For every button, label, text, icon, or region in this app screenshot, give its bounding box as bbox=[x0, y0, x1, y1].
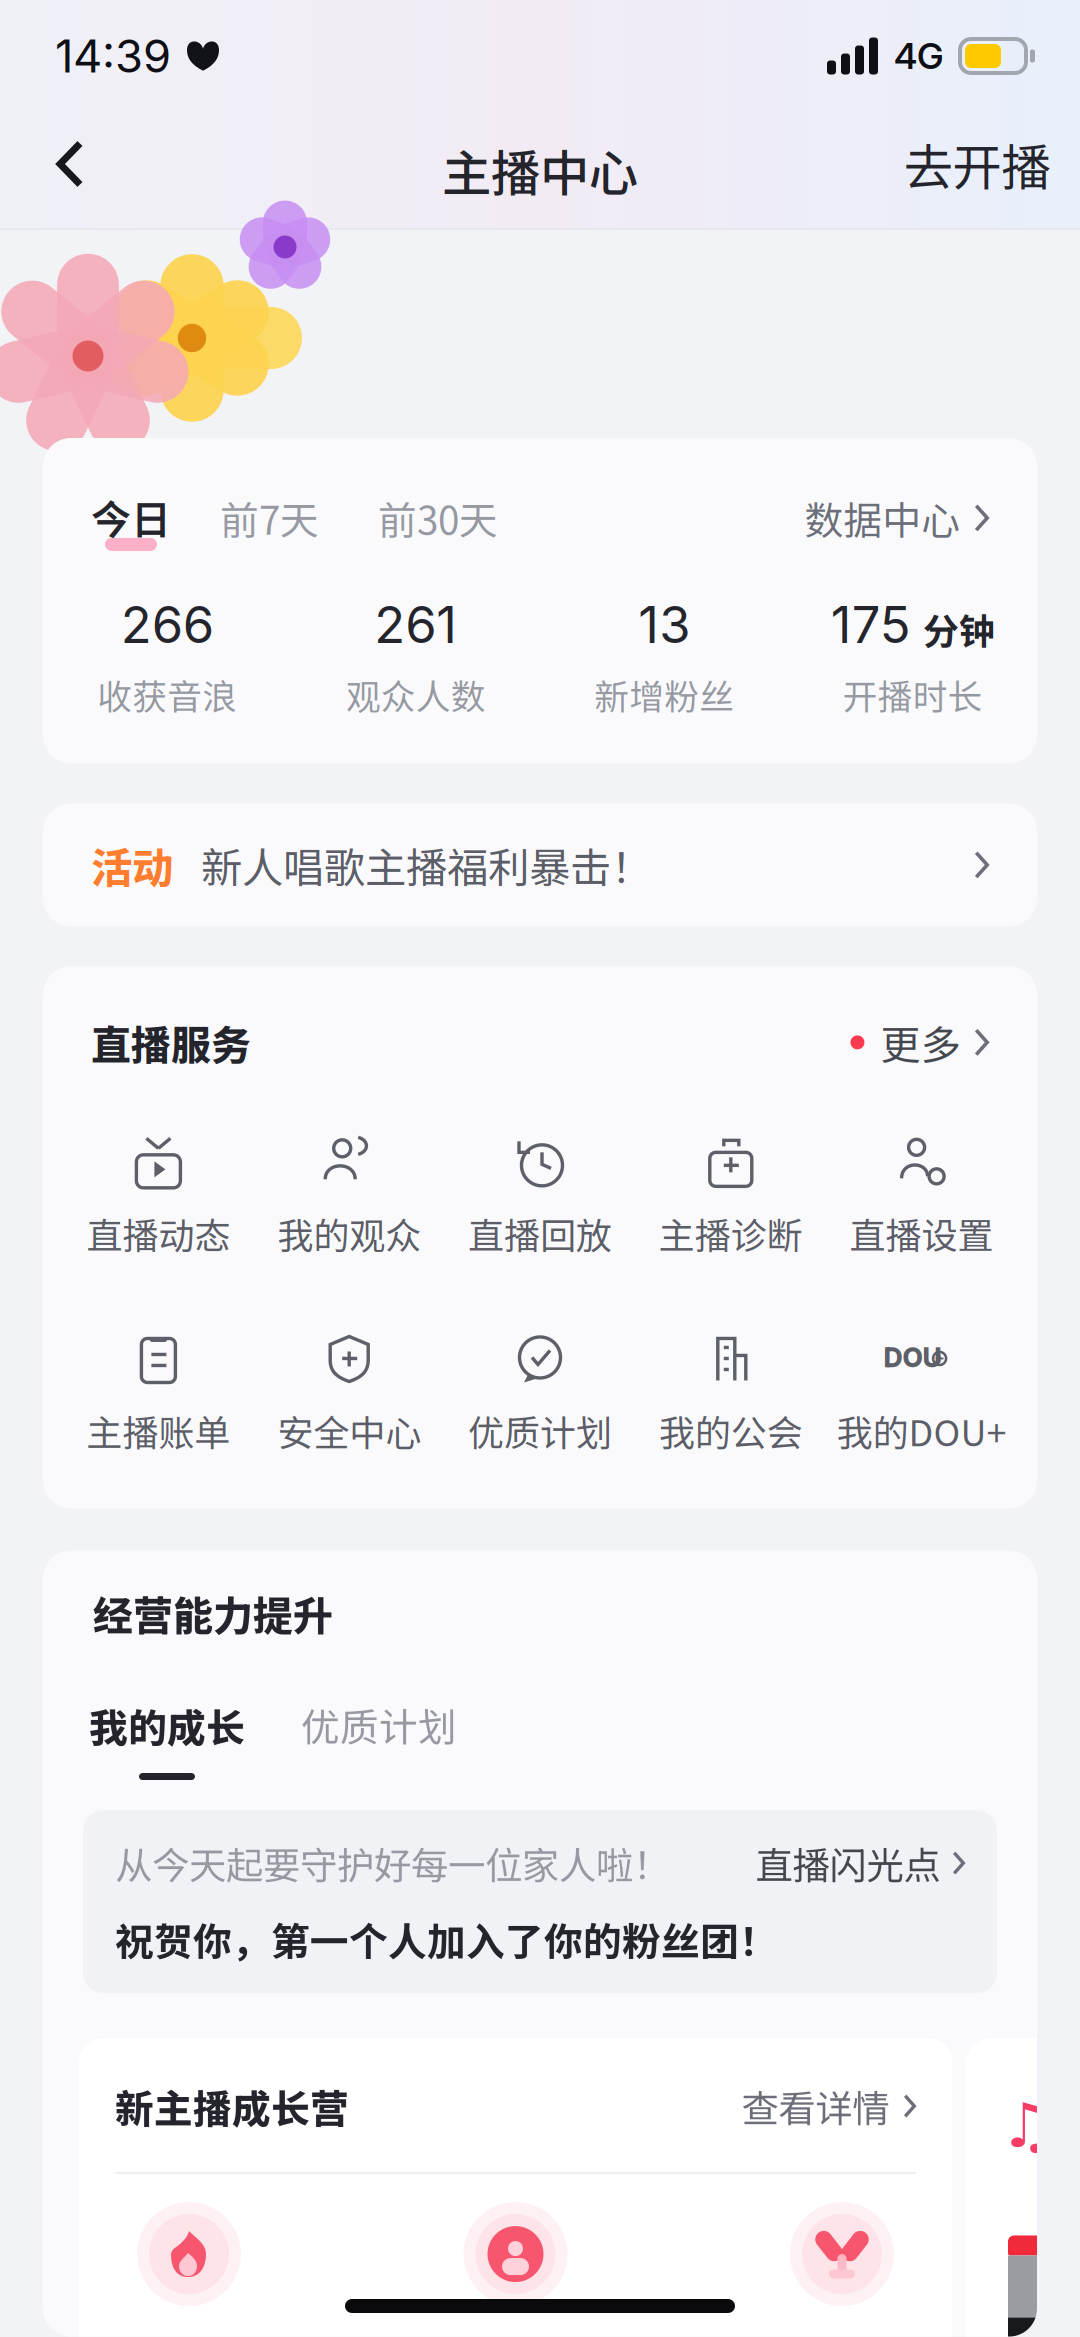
staticText: 直播服务 bbox=[91, 1013, 251, 1071]
staticText: 去开播 bbox=[903, 128, 1050, 200]
staticText: DOU bbox=[884, 1341, 942, 1374]
staticText: 261 bbox=[374, 594, 457, 655]
button[interactable]: 我的成长 bbox=[89, 1697, 245, 1780]
staticText: 前7天 bbox=[220, 490, 319, 546]
staticText: 我的成长 bbox=[89, 1697, 245, 1753]
button[interactable]: 主播账单 bbox=[63, 1332, 254, 1457]
staticText: 175 bbox=[831, 594, 911, 655]
staticText: 查看详情 bbox=[741, 2079, 889, 2133]
button[interactable]: 更多 bbox=[850, 1013, 989, 1071]
staticText: 13 bbox=[638, 594, 690, 655]
staticText: 主播诊断 bbox=[659, 1207, 803, 1259]
button[interactable]: 安全中心 bbox=[254, 1332, 445, 1457]
staticText: 新增粉丝 bbox=[594, 669, 734, 719]
staticText: 开播时长 bbox=[843, 669, 983, 719]
staticText: 14:39 bbox=[55, 29, 171, 83]
staticText: 新主播成长营 bbox=[115, 2078, 349, 2134]
staticText: 祝贺你，第一个人加入了你的粉丝团！ bbox=[115, 1911, 778, 1967]
button[interactable]: 活动 bbox=[43, 803, 1037, 926]
staticText: 新人唱歌主播福利暴击！ bbox=[201, 835, 652, 895]
button[interactable]: 数据中心 bbox=[804, 490, 989, 546]
staticText: 优质计划 bbox=[468, 1404, 612, 1457]
button[interactable]: 我的公会 bbox=[635, 1332, 826, 1457]
staticText: 前30天 bbox=[378, 490, 498, 546]
staticText: 主播账单 bbox=[86, 1404, 230, 1457]
button[interactable]: 优质计划 bbox=[445, 1332, 635, 1457]
button[interactable]: 直播动态 bbox=[63, 1135, 254, 1259]
staticText: 安全中心 bbox=[277, 1404, 421, 1457]
staticText: 我的公会 bbox=[659, 1404, 803, 1457]
button[interactable]: 前30天 bbox=[378, 490, 498, 546]
staticText: 优质计划 bbox=[301, 1696, 457, 1752]
button[interactable]: 直播闪光点 bbox=[755, 1836, 965, 1890]
button[interactable]: DOU bbox=[826, 1332, 1017, 1457]
staticText: 直播设置 bbox=[850, 1207, 994, 1259]
staticText: 今日 bbox=[91, 488, 171, 546]
button[interactable]: 主播诊断 bbox=[635, 1135, 826, 1259]
staticText: 主播中心 bbox=[442, 134, 638, 206]
staticText: 观众人数 bbox=[346, 669, 486, 719]
button[interactable]: 直播回放 bbox=[445, 1135, 635, 1259]
staticText: 266 bbox=[121, 594, 214, 655]
staticText: 更多 bbox=[880, 1013, 960, 1071]
staticText: 数据中心 bbox=[804, 490, 960, 546]
staticText: 直播回放 bbox=[468, 1207, 612, 1259]
staticText: 直播闪光点 bbox=[755, 1836, 940, 1890]
button[interactable]: 前7天 bbox=[220, 490, 319, 546]
staticText: 收获音浪 bbox=[97, 669, 237, 719]
staticText: 我的观众 bbox=[277, 1207, 421, 1259]
staticText: 直播动态 bbox=[86, 1207, 230, 1259]
staticText: 活动 bbox=[91, 835, 173, 895]
staticText: ♫ bbox=[1000, 2090, 1055, 2161]
staticText: 4G bbox=[894, 34, 944, 78]
staticText: 从今天起要守护好每一位家人啦！ bbox=[115, 1836, 670, 1890]
staticText: 分钟 bbox=[923, 603, 995, 655]
button[interactable]: Music bbox=[966, 2038, 1080, 2337]
button[interactable]: 我的观众 bbox=[254, 1135, 445, 1259]
button[interactable]: 今日 bbox=[91, 488, 171, 546]
button[interactable]: 直播设置 bbox=[826, 1135, 1017, 1259]
button[interactable]: 新主播成长营 bbox=[79, 2038, 952, 2337]
staticText: 经营能力提升 bbox=[93, 1584, 333, 1642]
button[interactable]: 优质计划 bbox=[301, 1710, 457, 1766]
button[interactable]: 去开播 bbox=[888, 112, 1066, 216]
button[interactable]: Back bbox=[14, 112, 126, 216]
staticText: 我的DOU+ bbox=[837, 1404, 1007, 1457]
